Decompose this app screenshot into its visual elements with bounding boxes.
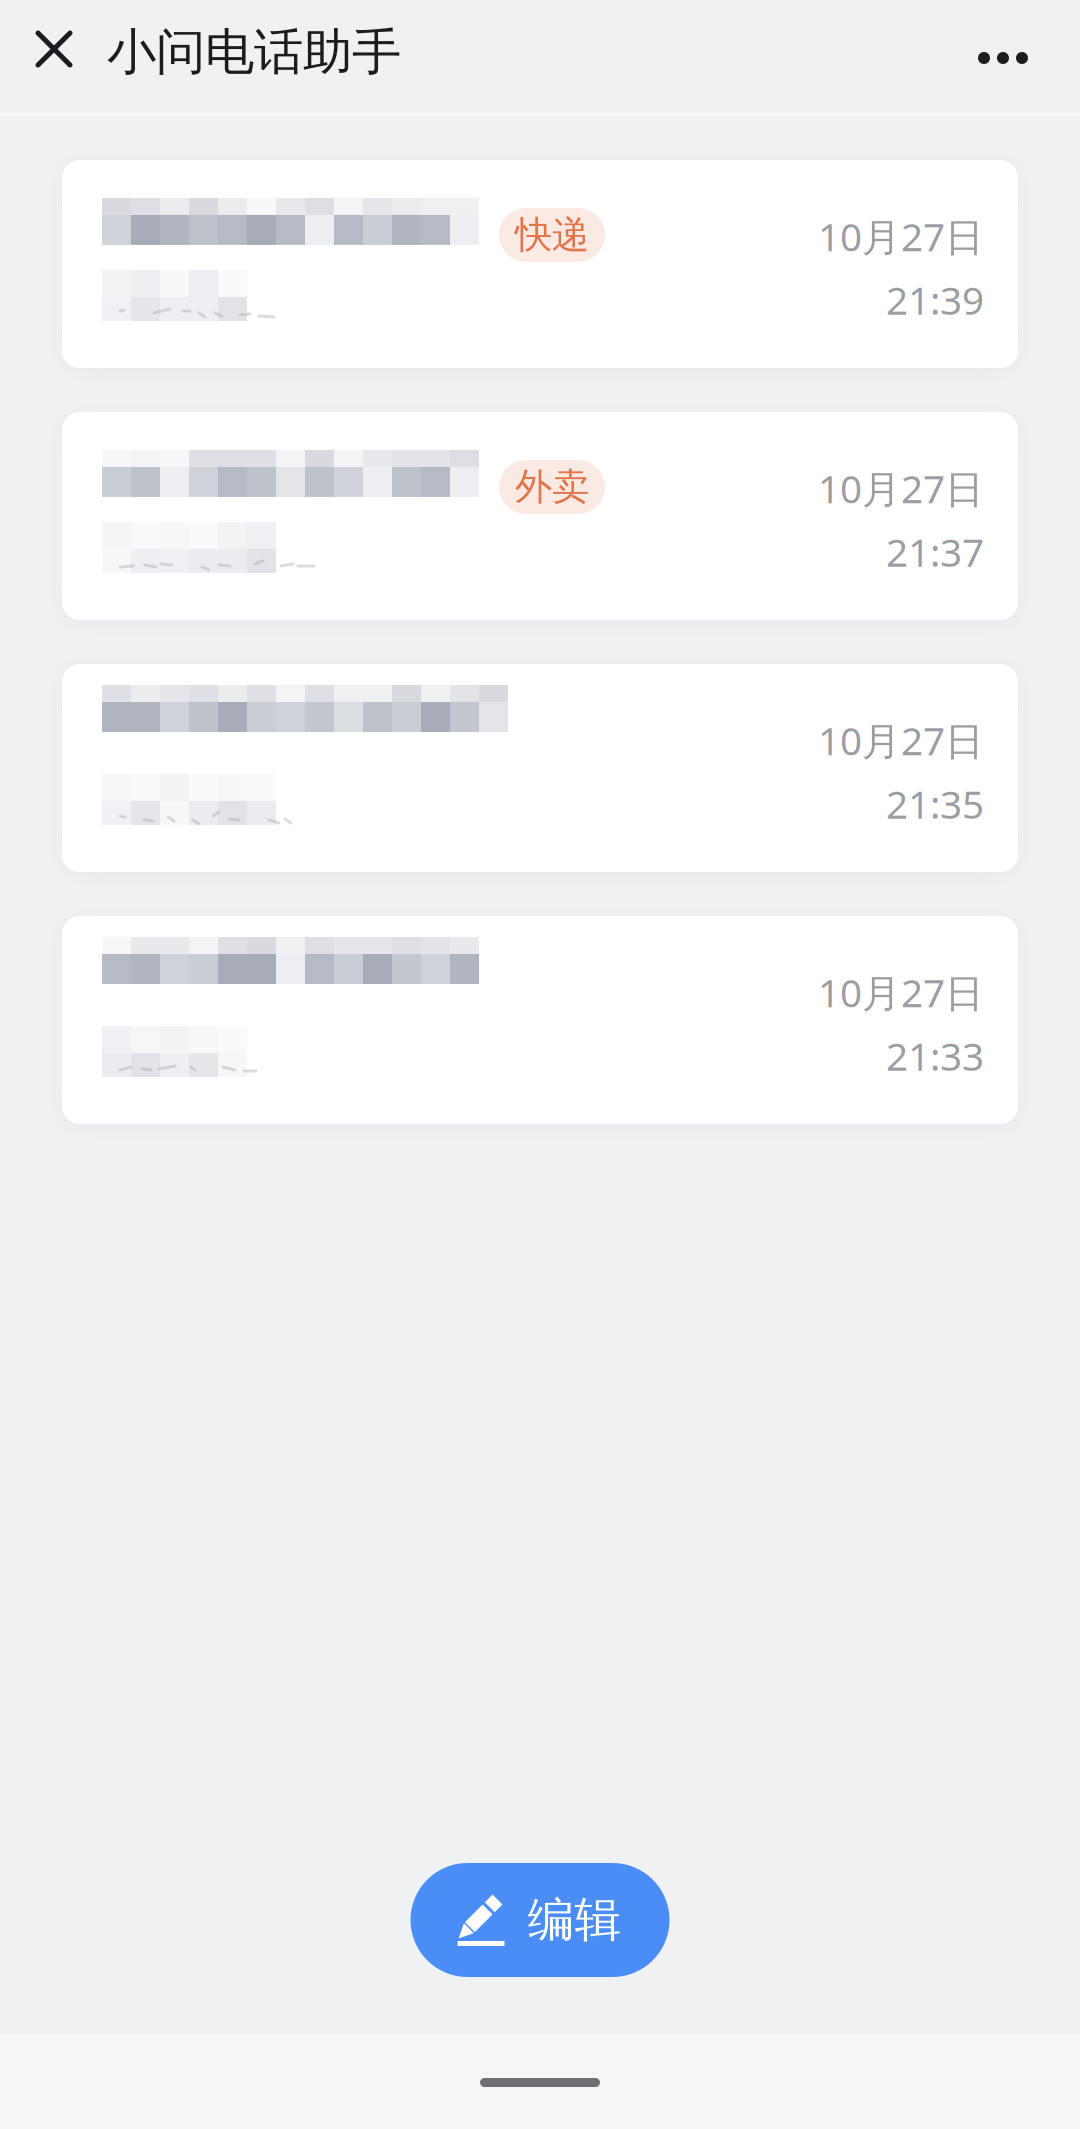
staticText: 编辑 <box>527 1891 621 1949</box>
staticText: 10月27日 <box>818 463 984 514</box>
staticText: 10月27日 <box>818 715 984 766</box>
staticText: 快递 <box>515 212 589 258</box>
staticText: 21:37 <box>886 526 984 577</box>
button[interactable]: 快递 <box>62 160 1018 368</box>
staticText: 21:39 <box>886 274 984 325</box>
staticText: 21:35 <box>886 778 984 829</box>
staticText: 10月27日 <box>818 967 984 1018</box>
button[interactable]: 10月27日 <box>62 916 1018 1124</box>
staticText: 10月27日 <box>818 211 984 262</box>
staticText: 小问电话助手 <box>107 22 401 82</box>
button[interactable]: 编辑 <box>410 1863 669 1977</box>
staticText: 21:33 <box>886 1030 984 1081</box>
staticText: 外卖 <box>515 464 589 510</box>
button[interactable]: Close <box>0 15 107 101</box>
button[interactable]: More <box>942 18 1080 98</box>
button[interactable]: 10月27日 <box>62 664 1018 872</box>
button[interactable]: 外卖 <box>62 412 1018 620</box>
